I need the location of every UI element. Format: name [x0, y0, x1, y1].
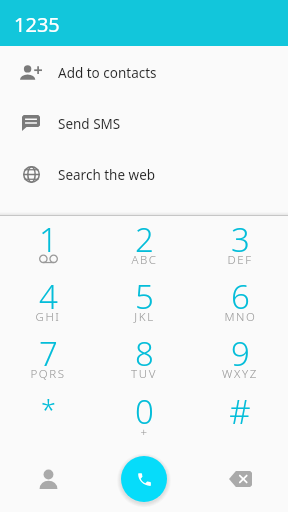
- staticText: 1: [39, 217, 58, 262]
- staticText: WXYZ: [222, 366, 258, 382]
- button[interactable]: Search the web: [0, 149, 288, 200]
- staticText: Add to contacts: [58, 64, 157, 82]
- staticText: +: [140, 424, 149, 440]
- staticText: 5: [135, 274, 154, 319]
- button[interactable]: Contacts: [0, 446, 96, 512]
- button[interactable]: 4: [0, 273, 96, 330]
- button[interactable]: 0: [96, 388, 192, 446]
- button[interactable]: 1: [0, 216, 96, 273]
- button[interactable]: 2: [96, 216, 192, 273]
- button[interactable]: 5: [96, 273, 192, 330]
- staticText: Search the web: [58, 166, 156, 184]
- button[interactable]: #: [192, 388, 288, 446]
- staticText: 2: [135, 217, 154, 262]
- button[interactable]: 7: [0, 330, 96, 388]
- staticText: 7: [39, 331, 58, 376]
- button[interactable]: 8: [96, 330, 192, 388]
- staticText: PQRS: [30, 366, 66, 382]
- staticText: 9: [231, 331, 250, 376]
- staticText: ABC: [131, 252, 158, 268]
- staticText: 0: [135, 389, 154, 434]
- staticText: 1235: [14, 11, 60, 38]
- staticText: #: [229, 389, 251, 434]
- button[interactable]: Add to contacts: [0, 47, 288, 98]
- staticText: *: [41, 391, 56, 428]
- staticText: 4: [39, 274, 58, 319]
- staticText: TUV: [131, 366, 157, 382]
- staticText: Send SMS: [58, 115, 121, 133]
- button[interactable]: 3: [192, 216, 288, 273]
- staticText: 3: [231, 217, 250, 262]
- staticText: 8: [135, 331, 154, 376]
- button[interactable]: Backspace: [192, 446, 288, 512]
- staticText: 6: [231, 274, 250, 319]
- button[interactable]: 9: [192, 330, 288, 388]
- staticText: MNO: [224, 309, 257, 325]
- button[interactable]: Call: [121, 456, 167, 502]
- button[interactable]: 6: [192, 273, 288, 330]
- button[interactable]: Send SMS: [0, 98, 288, 149]
- button[interactable]: *: [0, 388, 96, 446]
- staticText: GHI: [35, 309, 61, 325]
- staticText: JKL: [134, 309, 155, 325]
- staticText: DEF: [227, 252, 253, 268]
